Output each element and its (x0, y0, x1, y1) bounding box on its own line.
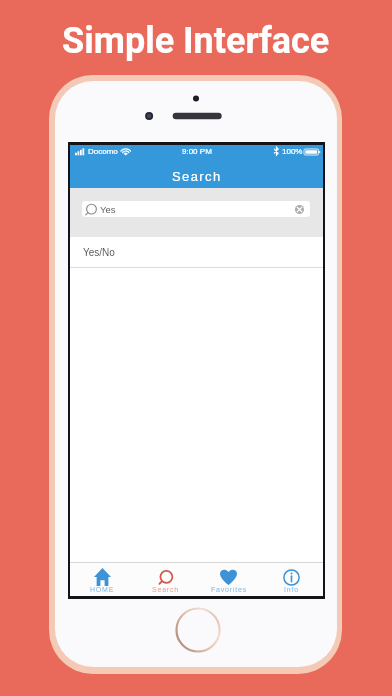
button[interactable]: Yes (82, 201, 310, 217)
button[interactable]: Clear text (292, 202, 306, 216)
staticText: Yes/No (83, 247, 115, 258)
staticText: 100% (282, 147, 303, 156)
staticText: Simple Interface (62, 20, 330, 62)
button[interactable]: Search (134, 563, 197, 596)
staticText: Docomo (88, 147, 118, 156)
staticText: Search (152, 586, 179, 594)
staticText: Info (284, 586, 299, 594)
button[interactable]: Favorites (197, 563, 260, 596)
button[interactable]: HOME (70, 563, 134, 596)
staticText: Search (172, 169, 222, 184)
button[interactable]: Yes/No (70, 237, 323, 267)
button[interactable]: Home (175, 607, 221, 653)
button[interactable]: Info (260, 563, 323, 596)
staticText: Yes (100, 204, 116, 215)
staticText: Favorites (211, 586, 247, 594)
staticText: HOME (90, 586, 115, 594)
staticText: 9:00 PM (182, 147, 212, 156)
